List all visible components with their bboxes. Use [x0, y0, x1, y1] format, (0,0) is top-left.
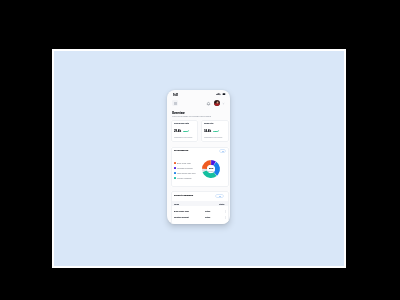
staticText: All: [222, 150, 224, 152]
staticText: Black Friday sales: [174, 210, 189, 212]
staticText: Name: [174, 203, 180, 205]
staticText: +12%: [213, 130, 218, 132]
staticText: Status: [219, 203, 225, 205]
staticText: Compared to last month: [174, 136, 193, 138]
staticText: Open rate: [204, 122, 214, 125]
button[interactable]: Monthly discount: [171, 214, 229, 220]
staticText: Performance: [174, 149, 189, 152]
button[interactable]: Menu: [172, 100, 178, 106]
staticText: Recent campaign: [174, 194, 194, 197]
staticText: Active: [205, 210, 211, 212]
staticText: Name: [174, 203, 180, 205]
staticText: Active: [205, 216, 211, 218]
staticText: Social media offer blast: [177, 172, 196, 174]
staticText: Monthly discount: [174, 216, 189, 218]
button[interactable]: Black Friday sales: [171, 208, 229, 214]
staticText: Status: [219, 203, 225, 205]
staticText: 9:41: [173, 93, 179, 96]
staticText: Overview: [172, 111, 185, 115]
staticText: Recent campaign: [174, 194, 194, 197]
staticText: Monthly discount: [174, 216, 189, 218]
staticText: 82%: [209, 167, 214, 170]
staticText: +24%: [183, 130, 188, 132]
button[interactable]: All: [215, 194, 224, 198]
button[interactable]: Expand profile menu: [222, 102, 225, 105]
staticText: Compared to last month: [204, 136, 223, 138]
staticText: 9:41: [173, 93, 179, 96]
staticText: 82%: [209, 167, 214, 170]
staticText: Black Friday sales: [174, 210, 189, 212]
staticText: Success: [208, 170, 214, 172]
button[interactable]: Open rate: [201, 120, 229, 142]
staticText: Performance: [174, 149, 189, 152]
button[interactable]: Notifications: [206, 101, 211, 106]
staticText: Message promotion: [177, 167, 193, 169]
staticText: Conversion rate: [174, 122, 189, 125]
staticText: Active: [205, 210, 211, 212]
staticText: Track and manage all activities performa…: [172, 115, 212, 118]
staticText: Black Friday sales: [177, 162, 191, 164]
staticText: 34.4k: [204, 129, 212, 133]
staticText: Overview: [172, 111, 185, 115]
staticText: 29.4k: [174, 129, 182, 133]
staticText: Conversion rate: [174, 122, 189, 125]
staticText: Active: [205, 216, 211, 218]
button[interactable]: Conversion rate: [171, 120, 198, 142]
staticText: +24%: [183, 130, 188, 132]
staticText: +12%: [213, 130, 218, 132]
button[interactable]: All: [219, 149, 226, 153]
staticText: 34.4k: [204, 129, 212, 133]
staticText: Open rate: [204, 122, 214, 125]
staticText: 29.4k: [174, 129, 182, 133]
staticText: Holiday Campaign: [177, 177, 192, 179]
staticText: All: [219, 195, 221, 197]
button[interactable]: Profile: [214, 100, 220, 106]
